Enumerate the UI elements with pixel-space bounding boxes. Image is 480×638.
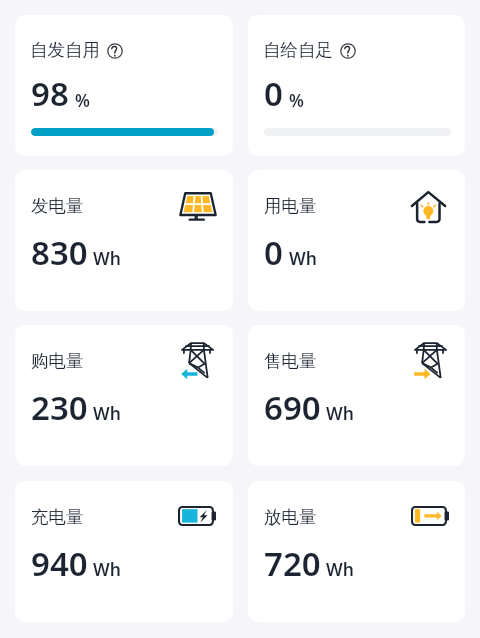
staticText: 98 xyxy=(31,71,69,116)
staticText: Wh xyxy=(326,401,354,425)
staticText: Wh xyxy=(289,246,317,270)
staticText: Wh xyxy=(326,557,354,581)
button[interactable]: 充电量 xyxy=(15,481,233,622)
button[interactable]: 发电量 xyxy=(15,170,233,311)
staticText: 自发自用 xyxy=(30,39,100,61)
staticText: 720 xyxy=(264,541,321,586)
staticText: 放电量 xyxy=(264,506,317,528)
staticText: 230 xyxy=(31,385,88,430)
button[interactable]: 售电量 xyxy=(248,325,465,466)
staticText: Wh xyxy=(93,246,121,270)
staticText: % xyxy=(75,89,90,112)
staticText: Wh xyxy=(93,401,121,425)
button[interactable]: Help xyxy=(340,43,356,59)
button[interactable]: 放电量 xyxy=(248,481,465,622)
other: Battery charge xyxy=(178,506,216,526)
button[interactable]: 用电量 xyxy=(248,170,465,311)
staticText: 发电量 xyxy=(31,195,84,217)
other: Solar generation xyxy=(180,191,216,221)
staticText: 购电量 xyxy=(31,350,84,372)
other: Purchased power xyxy=(181,342,214,379)
staticText: Wh xyxy=(93,557,121,581)
button[interactable]: Help xyxy=(107,43,123,59)
staticText: 充电量 xyxy=(31,506,84,528)
staticText: 用电量 xyxy=(264,195,317,217)
staticText: 830 xyxy=(31,230,88,275)
staticText: 自给自足 xyxy=(263,39,333,61)
other: Consumption xyxy=(411,191,446,223)
button[interactable]: 自给自足 xyxy=(248,15,465,156)
other: Battery discharge xyxy=(411,506,449,526)
staticText: 售电量 xyxy=(264,350,317,372)
staticText: 690 xyxy=(264,385,321,430)
staticText: 0 xyxy=(264,71,283,116)
other: Sold power xyxy=(414,342,447,379)
staticText: % xyxy=(289,89,304,112)
button[interactable]: 自发自用 xyxy=(15,15,233,156)
button[interactable]: 购电量 xyxy=(15,325,233,466)
staticText: 0 xyxy=(264,230,283,275)
staticText: 940 xyxy=(31,541,88,586)
